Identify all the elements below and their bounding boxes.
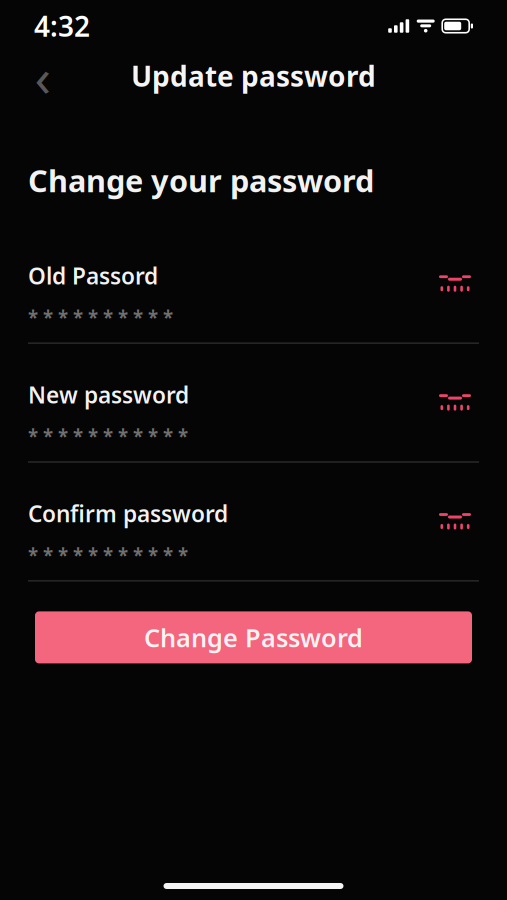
button[interactable]: Show Confirm password bbox=[431, 498, 479, 542]
staticText: New password bbox=[28, 380, 189, 410]
staticText: Change Password bbox=[144, 621, 363, 654]
button[interactable]: Back bbox=[20, 53, 66, 99]
staticText: 4:32 bbox=[34, 7, 90, 45]
button[interactable]: Show Old Passord bbox=[431, 261, 479, 305]
staticText: * * * * * * * * * * * bbox=[28, 543, 193, 567]
staticText: Change your password bbox=[28, 160, 374, 201]
staticText: Old Passord bbox=[28, 261, 158, 291]
staticText: * * * * * * * * * * * bbox=[28, 424, 193, 448]
button[interactable]: Change Password bbox=[35, 611, 472, 663]
button[interactable]: Show New password bbox=[431, 380, 479, 424]
staticText: Confirm password bbox=[28, 498, 228, 529]
staticText: ‹ bbox=[34, 41, 51, 111]
staticText: * * * * * * * * * * bbox=[28, 305, 178, 330]
staticText: Update password bbox=[131, 57, 376, 95]
